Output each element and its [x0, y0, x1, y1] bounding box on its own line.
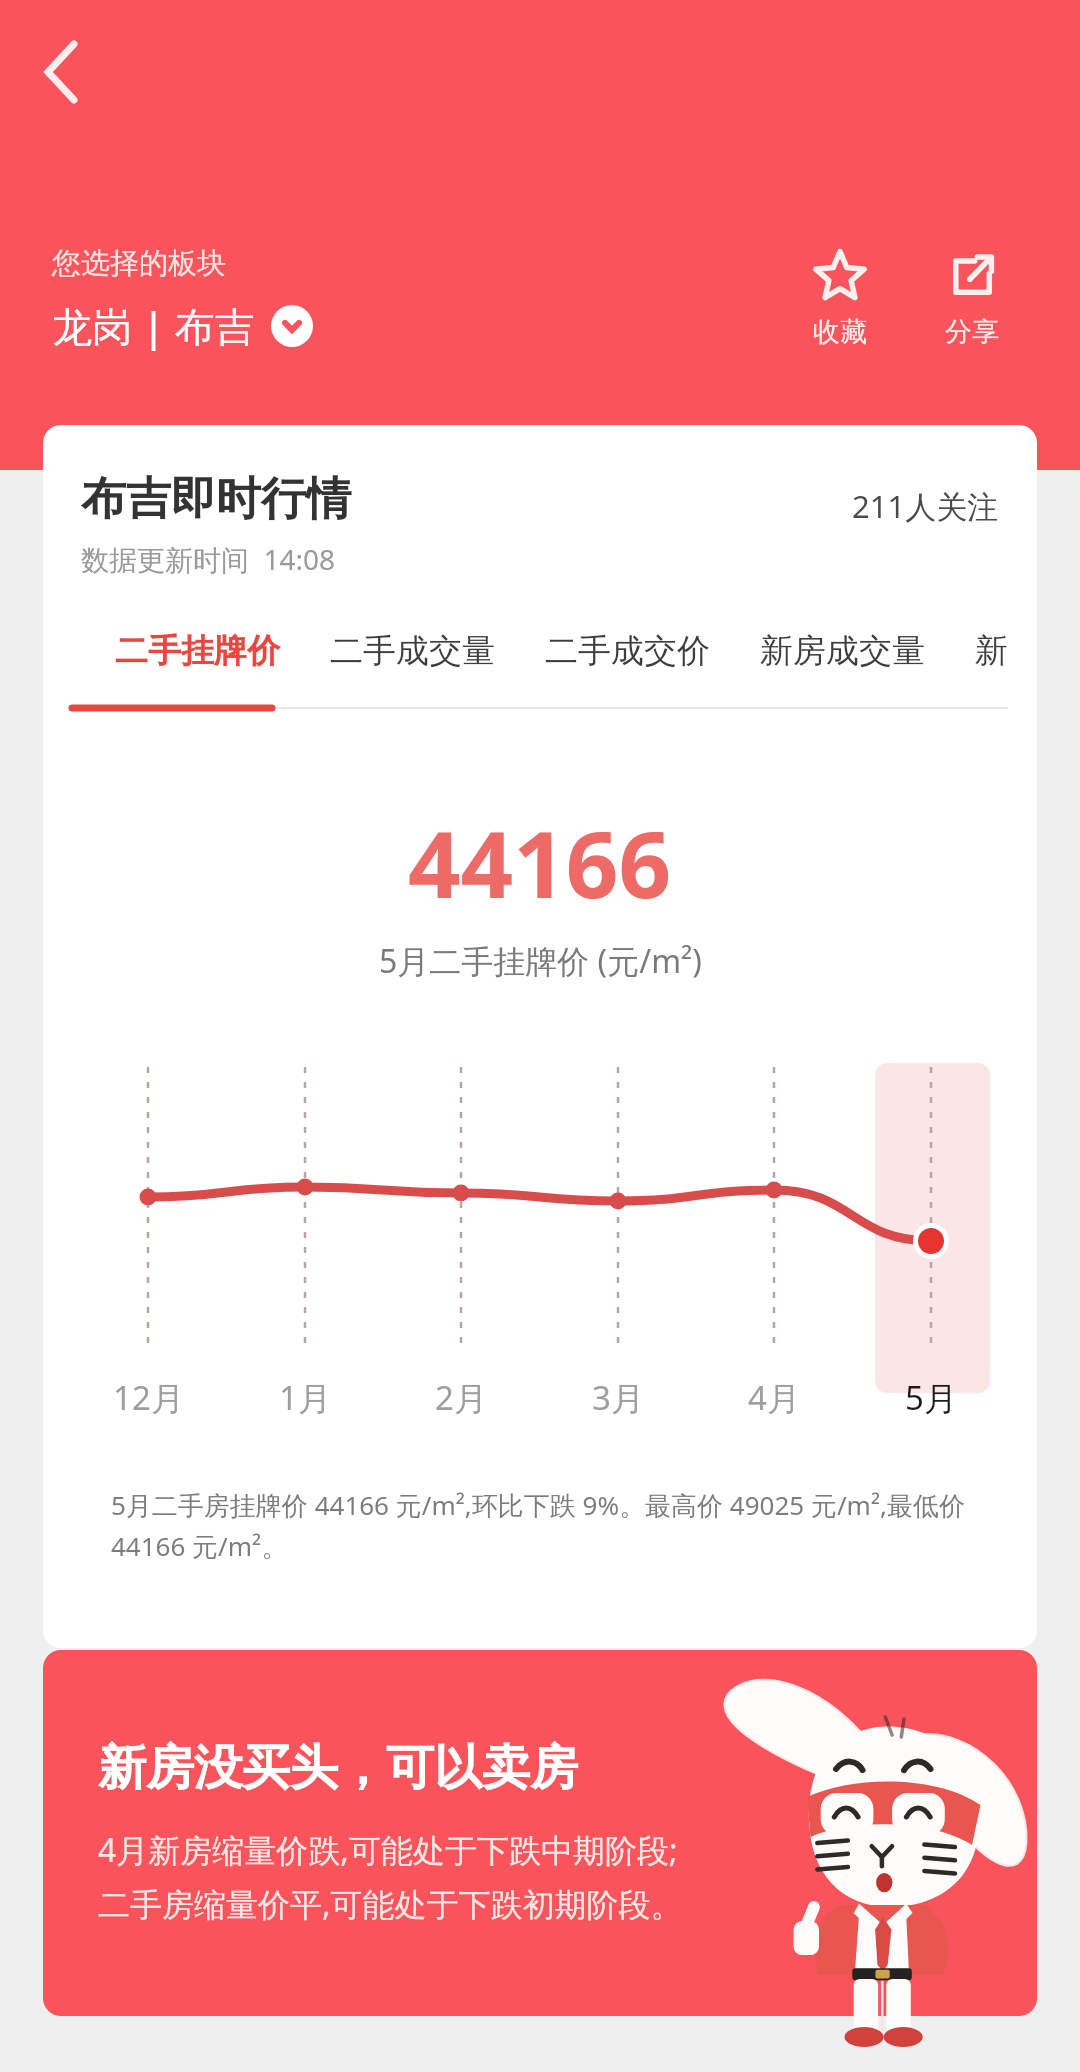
staticText: 您选择的板块 — [52, 245, 226, 282]
button[interactable]: 二手成交价 — [545, 630, 710, 672]
staticText: 二手房缩量价平,可能处于下跌初期阶段。 — [98, 1882, 683, 1926]
staticText: 分享 — [945, 315, 999, 349]
button[interactable]: 二手成交量 — [330, 630, 495, 672]
staticText: 数据更新时间 14:08 — [81, 540, 336, 578]
staticText: 44166 — [408, 800, 672, 925]
staticText: 211人关注 — [852, 485, 999, 527]
staticText: 4月新房缩量价跌,可能处于下跌中期阶段; — [98, 1828, 678, 1872]
button[interactable]: 新房成交量 — [760, 630, 925, 672]
staticText: 二手挂牌价 — [115, 630, 280, 672]
staticText: 龙岗 | 布吉 — [52, 298, 255, 353]
staticText: 新房成 — [975, 630, 1037, 672]
button[interactable]: 二手挂牌价 — [115, 630, 280, 672]
button[interactable]: 收藏 — [780, 249, 900, 349]
button[interactable]: 新房成 — [975, 630, 1037, 672]
button[interactable]: 龙岗 | 布吉 — [52, 298, 313, 353]
button[interactable] — [43, 1650, 1037, 2016]
staticText: 新房没买头，可以卖房 — [98, 1738, 578, 1798]
staticText: 5月 — [905, 1375, 957, 1420]
staticText: 收藏 — [813, 315, 867, 349]
staticText: 5月二手房挂牌价 44166 元/m²,环比下跌 9%。最高价 49025 元/… — [111, 1487, 981, 1564]
button[interactable]: Back — [18, 22, 118, 122]
staticText: 二手成交量 — [330, 630, 495, 672]
staticText: 4月 — [748, 1375, 800, 1420]
staticText: 12月 — [113, 1375, 184, 1420]
staticText: 5月二手挂牌价 (元/m²) — [379, 939, 702, 983]
button[interactable]: 分享 — [912, 249, 1032, 349]
staticText: 新房成交量 — [760, 630, 925, 672]
staticText: 布吉即时行情 — [81, 471, 351, 528]
staticText: 二手成交价 — [545, 630, 710, 672]
staticText: 3月 — [592, 1375, 644, 1420]
staticText: 1月 — [279, 1375, 331, 1420]
staticText: 2月 — [435, 1375, 487, 1420]
